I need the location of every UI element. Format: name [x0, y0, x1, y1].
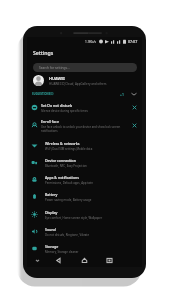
staticText: Enroll face — [41, 119, 59, 124]
button[interactable]: Wireless & networks — [27, 137, 142, 154]
button[interactable]: Set Do not disturb — [27, 100, 142, 115]
button[interactable]: Display — [27, 206, 142, 223]
staticText: Eye comfort, Home screen style, Wallpape… — [45, 216, 103, 220]
staticText: HUAWEI ID,Cloud, AppGallery and others — [49, 82, 107, 86]
staticText: Do not disturb, Ringtone, Vibrate — [45, 233, 89, 237]
staticText: Permissions, Default apps, App twin — [45, 181, 93, 185]
staticText: Device connection — [45, 158, 76, 163]
staticText: Battery — [45, 192, 58, 197]
staticText: Wi-Fi,Dual SIM settings,Mobile data — [45, 147, 93, 151]
button[interactable]: Sound — [27, 223, 142, 240]
staticText: Power saving mode, Battery usage — [45, 198, 92, 202]
button[interactable]: Device connection — [27, 154, 142, 171]
button[interactable]: Dismiss suggestion — [131, 104, 138, 111]
button[interactable]: Collapse suggestions — [131, 91, 137, 97]
staticText: Memory, Storage cleaner — [45, 250, 79, 254]
button[interactable]: Storage — [27, 240, 142, 257]
button[interactable]: HUAWEI — [27, 73, 142, 88]
button[interactable]: Dismiss suggestion — [131, 122, 138, 129]
staticText: Search for settings... — [39, 66, 70, 70]
staticText: Sound — [45, 227, 56, 232]
button[interactable]: Search for settings... — [33, 63, 137, 72]
button[interactable]: Home — [80, 256, 89, 265]
staticText: Apps & notifications — [45, 175, 80, 180]
staticText: Silence device during specific times — [41, 109, 88, 113]
staticText: Set Do not disturb — [41, 103, 73, 108]
button[interactable]: Battery — [27, 188, 142, 205]
staticText: SUGGESTIONS(3) — [32, 92, 54, 96]
staticText: Wireless & networks — [45, 141, 80, 146]
staticText: Storage — [45, 244, 59, 249]
button[interactable]: Recent apps — [105, 256, 114, 265]
button[interactable]: Enroll face — [27, 118, 142, 133]
staticText: Settings — [33, 49, 54, 56]
staticText: Use face unlock to unlock your device an… — [41, 125, 128, 133]
staticText: 07:07 — [128, 39, 138, 44]
staticText: 1.9Kb/s — [85, 40, 97, 44]
staticText: HUAWEI — [49, 76, 65, 81]
staticText: Bluetooth, NFC, Easy Projection — [45, 164, 87, 168]
button[interactable]: Back — [54, 256, 63, 265]
button[interactable]: Hide keyboard — [33, 256, 42, 265]
staticText: Display — [45, 210, 58, 215]
staticText: +1 — [120, 92, 124, 96]
button[interactable]: Apps & notifications — [27, 171, 142, 188]
